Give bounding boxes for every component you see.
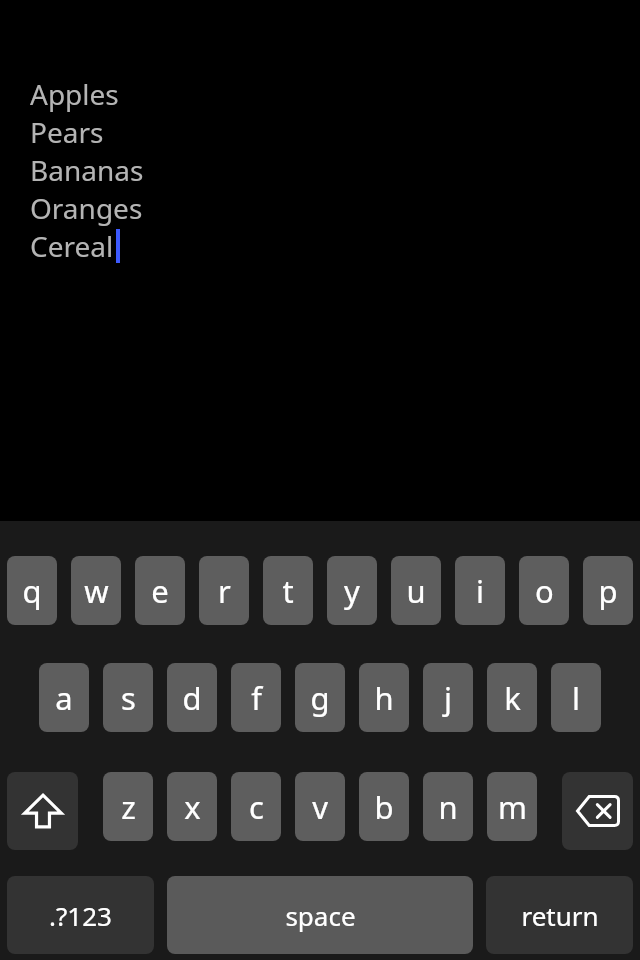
staticText: v bbox=[312, 786, 328, 828]
button[interactable]: g bbox=[295, 663, 345, 732]
button[interactable]: n bbox=[423, 772, 473, 841]
button[interactable]: m bbox=[487, 772, 537, 841]
button[interactable]: r bbox=[199, 556, 249, 625]
button[interactable]: f bbox=[231, 663, 281, 732]
staticText: f bbox=[251, 677, 262, 719]
staticText: z bbox=[121, 786, 136, 828]
staticText: w bbox=[84, 570, 109, 612]
staticText: .?123 bbox=[49, 898, 112, 933]
staticText: return bbox=[521, 898, 599, 933]
button[interactable]: space bbox=[167, 876, 473, 954]
button[interactable]: d bbox=[167, 663, 217, 732]
button[interactable]: e bbox=[135, 556, 185, 625]
button[interactable]: w bbox=[71, 556, 121, 625]
staticText: h bbox=[374, 677, 394, 719]
button[interactable]: v bbox=[295, 772, 345, 841]
staticText: p bbox=[598, 570, 618, 612]
button[interactable]: .?123 bbox=[7, 876, 154, 954]
button[interactable]: l bbox=[551, 663, 601, 732]
staticText: Bananas bbox=[30, 151, 144, 189]
button[interactable]: h bbox=[359, 663, 409, 732]
button[interactable]: i bbox=[455, 556, 505, 625]
staticText: g bbox=[310, 677, 330, 719]
staticText: u bbox=[406, 570, 426, 612]
button[interactable]: p bbox=[583, 556, 633, 625]
staticText: space bbox=[285, 898, 356, 933]
staticText: e bbox=[151, 570, 169, 612]
staticText: y bbox=[344, 570, 360, 612]
button[interactable]: y bbox=[327, 556, 377, 625]
button[interactable]: u bbox=[391, 556, 441, 625]
button[interactable]: k bbox=[487, 663, 537, 732]
staticText: i bbox=[476, 570, 484, 612]
button[interactable]: j bbox=[423, 663, 473, 732]
button[interactable]: o bbox=[519, 556, 569, 625]
staticText: Apples bbox=[30, 75, 119, 113]
staticText: o bbox=[535, 570, 554, 612]
staticText: c bbox=[249, 786, 264, 828]
staticText: m bbox=[498, 786, 527, 828]
button[interactable]: b bbox=[359, 772, 409, 841]
button[interactable]: a bbox=[39, 663, 89, 732]
button[interactable]: z bbox=[103, 772, 153, 841]
staticText: j bbox=[444, 677, 452, 719]
staticText: l bbox=[572, 677, 580, 719]
button[interactable]: return bbox=[486, 876, 633, 954]
staticText: n bbox=[438, 786, 458, 828]
staticText: s bbox=[121, 677, 136, 719]
button[interactable]: c bbox=[231, 772, 281, 841]
button[interactable]: s bbox=[103, 663, 153, 732]
staticText: d bbox=[182, 677, 202, 719]
button[interactable]: x bbox=[167, 772, 217, 841]
staticText: k bbox=[504, 677, 521, 719]
staticText: b bbox=[374, 786, 394, 828]
staticText: Oranges bbox=[30, 189, 143, 227]
button[interactable]: Shift bbox=[7, 772, 78, 850]
staticText: a bbox=[55, 677, 73, 719]
staticText: t bbox=[282, 570, 294, 612]
staticText: Pears bbox=[30, 113, 104, 151]
staticText: q bbox=[22, 570, 42, 612]
staticText: x bbox=[184, 786, 201, 828]
button[interactable]: q bbox=[7, 556, 57, 625]
button[interactable]: Apples bbox=[0, 0, 640, 521]
staticText: Cereal bbox=[30, 227, 114, 265]
button[interactable]: t bbox=[263, 556, 313, 625]
staticText: r bbox=[218, 570, 231, 612]
button[interactable]: Backspace bbox=[562, 772, 633, 850]
